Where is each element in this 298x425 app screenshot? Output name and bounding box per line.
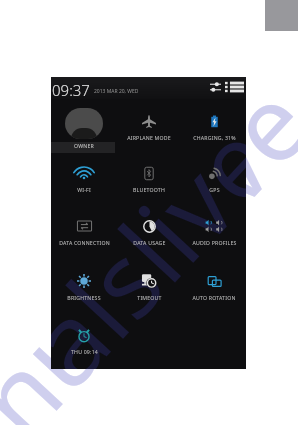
staticText: BLUETOOTH: [133, 186, 165, 193]
staticText: AUTO ROTATION: [192, 294, 236, 301]
staticText: AIRPLANE MODE: [127, 134, 171, 141]
button[interactable]: Data connection: [60, 213, 108, 239]
staticText: OWNER: [74, 142, 94, 149]
button[interactable]: Owner: [65, 108, 103, 139]
staticText: BRIGHTNESS: [67, 294, 101, 301]
staticText: manualslive.com: [0, 0, 298, 425]
staticText: TIMEOUT: [137, 294, 162, 301]
button[interactable]: Alarm: [60, 322, 108, 348]
button[interactable]: Brightness: [60, 268, 108, 294]
staticText: GPS: [209, 186, 220, 193]
button[interactable]: Bluetooth: [125, 160, 173, 186]
staticText: manualslive.com: [51, 77, 246, 369]
button[interactable]: Timeout: [125, 268, 173, 294]
staticText: WI-FI: [77, 186, 91, 193]
button[interactable]: Data usage: [125, 213, 173, 239]
button[interactable]: Notifications: [225, 81, 244, 93]
button[interactable]: Auto rotation: [190, 268, 238, 294]
staticText: CHARGING, 31%: [193, 134, 236, 141]
staticText: THU 09:14: [71, 348, 98, 355]
staticText: DATA CONNECTION: [59, 239, 110, 246]
staticText: 09:37: [52, 80, 90, 100]
staticText: 2013 MAR 20, WED: [94, 88, 139, 95]
button[interactable]: Audio profiles: [190, 213, 238, 239]
button[interactable]: Settings: [210, 81, 221, 93]
staticText: AUDIO PROFILES: [192, 239, 237, 246]
staticText: DATA USAGE: [133, 239, 166, 246]
button[interactable]: Airplane mode: [125, 108, 173, 134]
button[interactable]: Wi-Fi: [60, 160, 108, 186]
button[interactable]: GPS: [190, 160, 238, 186]
button[interactable]: Battery: [190, 108, 238, 134]
